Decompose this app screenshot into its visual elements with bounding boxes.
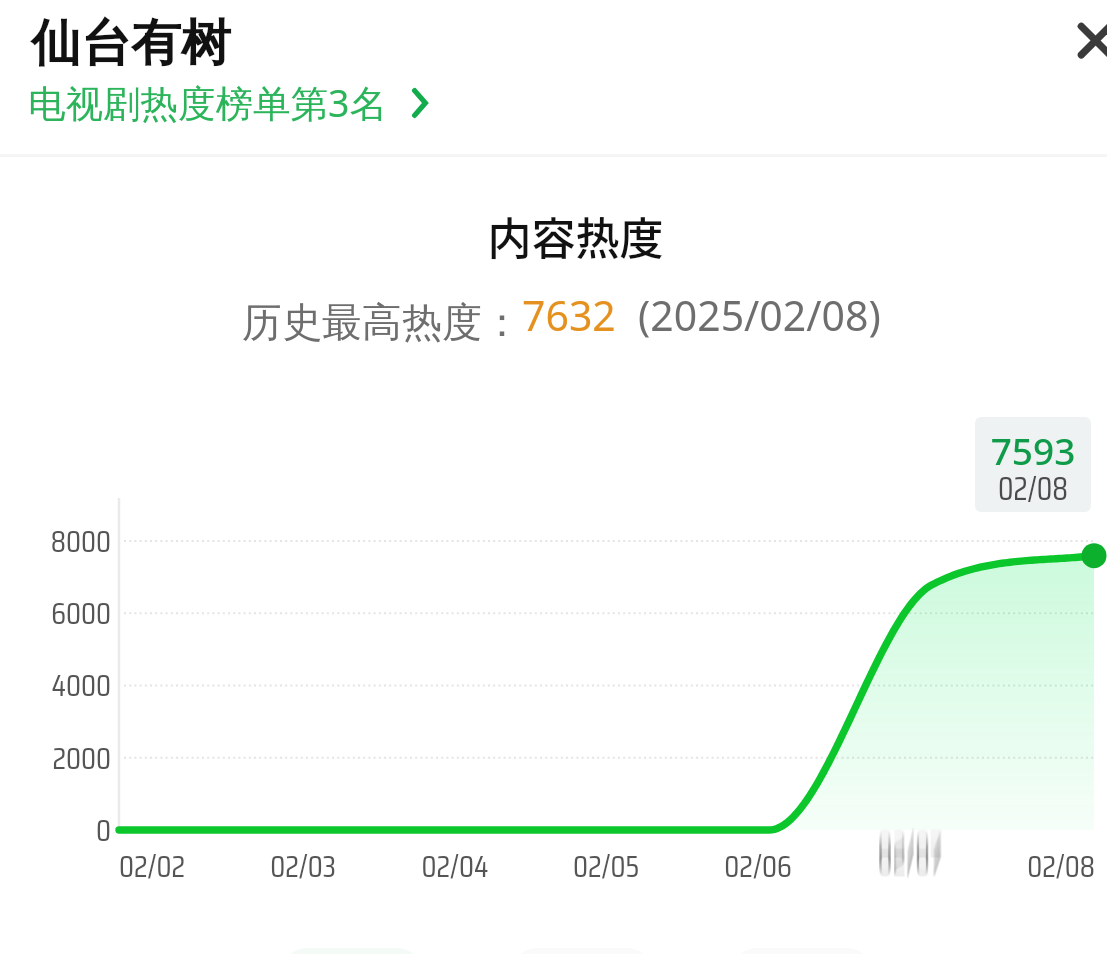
- staticText: 02/07: [850, 818, 970, 867]
- staticText: 仙台有树: [31, 12, 231, 75]
- staticText: 02/07: [850, 823, 970, 872]
- staticText: 02/07: [850, 830, 970, 879]
- staticText: 02/07: [850, 819, 970, 868]
- staticText: 4000: [0, 661, 111, 710]
- staticText: 02/06: [698, 842, 818, 891]
- staticText: 0: [0, 806, 111, 855]
- staticText: 02/07: [850, 842, 970, 891]
- staticText: 02/07: [850, 834, 970, 883]
- staticText: 02/07: [850, 831, 970, 880]
- staticText: 历史最高热度：: [242, 297, 522, 347]
- button[interactable]: 仙台有树: [31, 12, 231, 75]
- staticText: 2000: [0, 734, 111, 783]
- staticText: 02/07: [850, 829, 970, 878]
- staticText: 02/07: [850, 820, 970, 869]
- staticText: 02/04: [395, 842, 515, 891]
- staticText: (2025/02/08): [638, 287, 881, 343]
- staticText: 02/07: [850, 817, 970, 866]
- staticText: 02/05: [546, 842, 666, 891]
- staticText: 02/07: [850, 815, 970, 864]
- staticText: 7632: [522, 287, 616, 343]
- staticText: 02/07: [850, 836, 970, 885]
- staticText: 02/07: [850, 837, 970, 886]
- staticText: 02/08: [975, 464, 1091, 512]
- staticText: 02/07: [850, 840, 970, 889]
- staticText: 8000: [0, 517, 111, 566]
- button[interactable]: 电视剧热度榜单第3名: [28, 77, 428, 128]
- staticText: 02/02: [92, 842, 212, 891]
- staticText: 02/07: [850, 827, 970, 876]
- staticText: 02/07: [850, 821, 970, 870]
- button[interactable]: Close: [1053, 0, 1107, 83]
- staticText: 02/07: [850, 838, 970, 887]
- staticText: 02/08: [1001, 842, 1107, 891]
- staticText: 02/07: [850, 828, 970, 877]
- staticText: 02/07: [850, 839, 970, 888]
- staticText: 02/07: [850, 816, 970, 865]
- staticText: 02/07: [850, 833, 970, 882]
- staticText: 02/07: [850, 824, 970, 873]
- staticText: 02/07: [850, 835, 970, 884]
- staticText: 6000: [0, 589, 111, 638]
- staticText: 内容热度: [22, 204, 1107, 268]
- button[interactable]: [278, 948, 426, 954]
- staticText: 02/07: [850, 825, 970, 874]
- staticText: 02/07: [850, 826, 970, 875]
- staticText: 02/03: [243, 842, 363, 891]
- staticText: 02/07: [850, 832, 970, 881]
- staticText: 电视剧热度榜单第3名: [28, 77, 387, 128]
- staticText: 02/07: [850, 822, 970, 871]
- staticText: 7593: [975, 425, 1091, 475]
- button[interactable]: 7593: [975, 417, 1091, 512]
- staticText: 02/07: [850, 841, 970, 890]
